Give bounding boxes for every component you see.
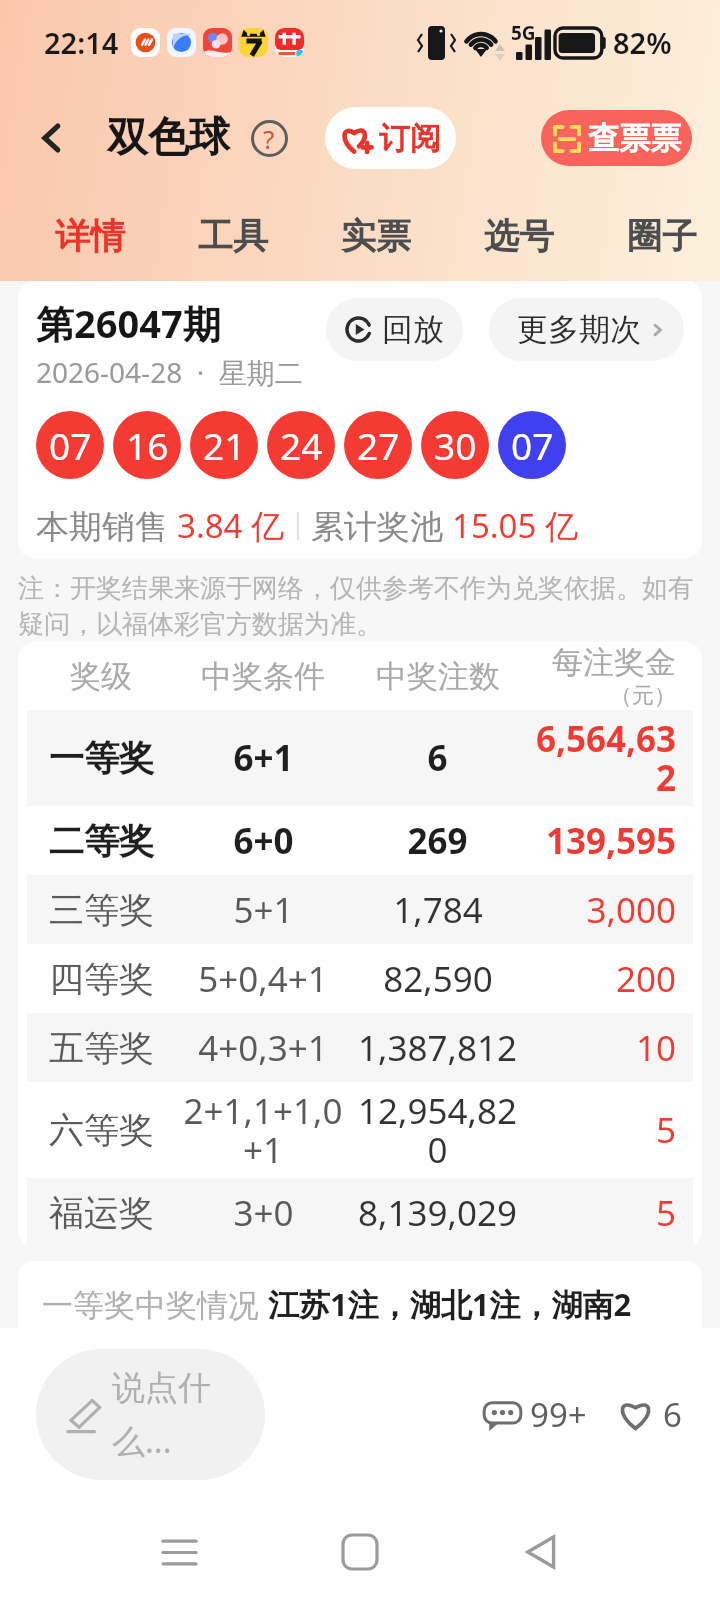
button[interactable]: Home — [325, 1517, 395, 1587]
staticText: 15.05 亿 — [452, 503, 578, 548]
button[interactable]: 更多期次 — [489, 298, 684, 361]
staticText: 6,564,632 — [524, 715, 676, 801]
button[interactable]: Back — [506, 1517, 576, 1587]
staticText: 一等奖 — [49, 736, 154, 780]
staticText: 5 — [655, 1189, 676, 1237]
staticText: 三等奖 — [49, 888, 154, 932]
staticText: 200 — [615, 955, 676, 1003]
staticText: 每注奖金 — [552, 643, 676, 682]
staticText: 3,000 — [586, 886, 676, 934]
button[interactable]: 6 — [613, 1384, 686, 1445]
staticText: 27 — [357, 420, 400, 470]
staticText: 双色球 — [107, 112, 230, 164]
staticText: 30 — [434, 420, 477, 470]
staticText: 中奖条件 — [201, 657, 325, 696]
staticText: 说点什么... — [112, 1367, 255, 1463]
staticText: 8,139,029 — [358, 1189, 517, 1237]
staticText: 07 — [511, 420, 554, 470]
staticText: 82% — [613, 23, 672, 62]
staticText: 6 — [427, 734, 448, 782]
staticText: 江苏1注，湖北1注，湖南2 — [268, 1283, 632, 1325]
staticText: 奖级 — [70, 657, 132, 696]
staticText: 注：开奖结果来源于网络，仅供参考不作为兑奖依据。如有疑问，以福体彩官方数据为准。 — [18, 572, 712, 641]
staticText: 回放 — [382, 310, 444, 349]
staticText: 21 — [203, 420, 246, 470]
staticText: 6 — [663, 1392, 682, 1437]
staticText: 第26047期 — [36, 297, 221, 349]
button[interactable]: 详情 — [55, 199, 125, 273]
staticText: 累计奖池 — [311, 503, 452, 548]
button[interactable]: Help — [247, 116, 291, 160]
button[interactable]: 回放 — [326, 298, 463, 361]
button[interactable]: 工具 — [198, 199, 268, 273]
staticText: 工具 — [198, 214, 268, 258]
staticText: 5G — [511, 20, 536, 46]
staticText: 10 — [635, 1024, 676, 1072]
staticText: 查票票 — [588, 119, 681, 158]
staticText: 4+0,3+1 — [198, 1024, 328, 1072]
staticText: 本期销售 — [36, 503, 177, 548]
button[interactable]: 实票 — [341, 199, 411, 273]
staticText: 五等奖 — [49, 1026, 154, 1070]
staticText: 07 — [49, 420, 92, 470]
staticText: 二等奖 — [49, 819, 154, 863]
staticText: 圈子 — [627, 214, 697, 258]
button[interactable]: Back — [26, 112, 78, 164]
staticText: 六等奖 — [49, 1108, 154, 1152]
staticText: ? — [263, 121, 275, 156]
button[interactable]: 99+ — [479, 1384, 591, 1445]
staticText: 3+0 — [233, 1189, 294, 1237]
staticText: 24 — [280, 420, 323, 470]
staticText: 福运奖 — [49, 1191, 154, 1235]
staticText: 1,784 — [393, 886, 483, 934]
staticText: 5+0,4+1 — [198, 955, 328, 1003]
staticText: 1,387,812 — [358, 1024, 517, 1072]
staticText: 选号 — [484, 214, 554, 258]
staticText: 详情 — [55, 214, 125, 258]
button[interactable]: 说点什么... — [36, 1349, 265, 1480]
button[interactable]: 订阅 — [325, 107, 456, 169]
staticText: 16 — [126, 420, 169, 470]
staticText: 更多期次 — [517, 310, 641, 349]
button[interactable]: Recent apps — [144, 1517, 214, 1587]
staticText: 四等奖 — [49, 957, 154, 1001]
staticText: 82,590 — [383, 955, 493, 1003]
staticText: 2026-04-28 · 星期二 — [36, 353, 303, 391]
staticText: 22:14 — [44, 23, 119, 62]
staticText: 6+0 — [233, 817, 294, 865]
staticText: 订阅 — [379, 119, 441, 158]
staticText: 99+ — [530, 1392, 587, 1437]
staticText: 2+1,1+1,0+1 — [175, 1087, 351, 1173]
staticText: 139,595 — [545, 817, 676, 865]
button[interactable]: 选号 — [484, 199, 554, 273]
staticText: （元） — [610, 682, 676, 710]
staticText: 6+1 — [233, 734, 294, 782]
button[interactable]: 圈子 — [627, 199, 697, 273]
staticText: 5+1 — [233, 886, 294, 934]
staticText: 5 — [655, 1106, 676, 1154]
staticText: 一等奖中奖情况 — [42, 1283, 268, 1325]
staticText: 3.84 亿 — [177, 503, 285, 548]
staticText: 12,954,820 — [351, 1087, 524, 1173]
button[interactable]: 查票票 — [541, 110, 692, 166]
staticText: 中奖注数 — [376, 657, 500, 696]
staticText: 实票 — [341, 214, 411, 258]
staticText: 269 — [407, 817, 468, 865]
